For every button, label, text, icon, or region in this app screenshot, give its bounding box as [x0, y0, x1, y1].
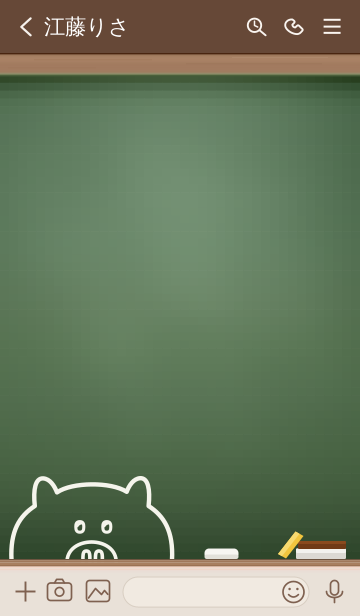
button[interactable]: Call	[0, 0, 360, 616]
button[interactable]: Stickers	[0, 0, 360, 616]
button[interactable]: Voice message	[0, 0, 360, 616]
staticText: 江藤りさ	[44, 14, 130, 40]
button[interactable]: Add attachment	[0, 0, 360, 616]
button[interactable]: Camera	[0, 0, 360, 616]
button[interactable]: Photos	[0, 0, 360, 616]
button[interactable]: Back	[0, 0, 360, 616]
button[interactable]: Menu	[0, 0, 360, 616]
button[interactable]: Search	[0, 0, 360, 616]
